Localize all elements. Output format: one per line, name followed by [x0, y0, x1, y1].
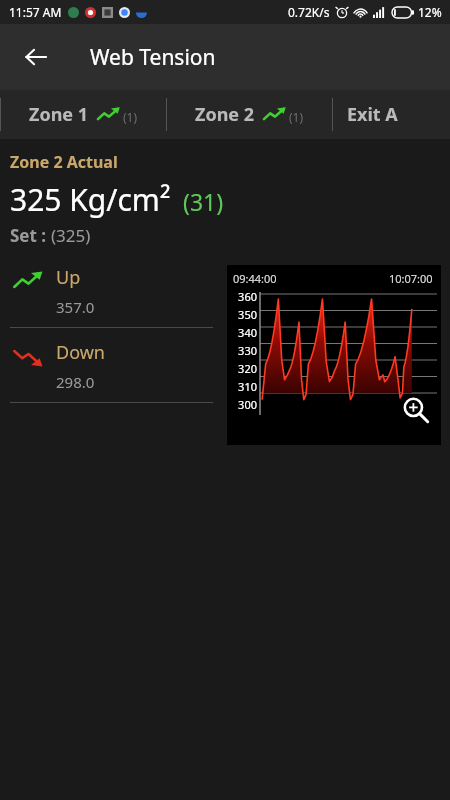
staticText: (1): [123, 109, 138, 125]
button[interactable]: Up: [0, 265, 223, 317]
staticText: Exit A: [347, 102, 398, 127]
button[interactable]: Exit A: [333, 90, 450, 139]
button[interactable]: Zone 2: [167, 90, 332, 139]
staticText: Web Tension: [90, 43, 216, 72]
button[interactable]: Down: [0, 340, 223, 392]
staticText: Zone 1: [29, 102, 89, 127]
staticText: 10:07:00: [389, 271, 433, 286]
staticText: 360: [231, 289, 257, 304]
staticText: 320: [231, 361, 257, 376]
staticText: 300: [231, 397, 257, 412]
staticText: Up: [56, 265, 81, 290]
staticText: 357.0: [56, 297, 95, 317]
staticText: 350: [231, 307, 257, 322]
staticText: (31): [183, 186, 224, 217]
button[interactable]: Zone 1: [1, 90, 166, 139]
staticText: 11:57 AM: [9, 4, 62, 20]
staticText: (325): [51, 224, 91, 247]
staticText: 298.0: [56, 372, 95, 392]
button[interactable]: Trend chart: [227, 265, 441, 445]
button[interactable]: Back: [14, 35, 58, 79]
staticText: (1): [289, 109, 304, 125]
staticText: 325 Kg/cm²: [10, 179, 171, 220]
staticText: 12%: [418, 4, 442, 20]
staticText: 09:44:00: [233, 271, 277, 286]
staticText: Down: [56, 340, 105, 365]
staticText: 330: [231, 343, 257, 358]
staticText: Zone 2: [195, 102, 255, 127]
staticText: 310: [231, 379, 257, 394]
staticText: Set :: [10, 224, 51, 247]
staticText: Zone 2 Actual: [10, 151, 118, 173]
staticText: 340: [231, 325, 257, 340]
staticText: 0.72K/s: [288, 4, 330, 20]
